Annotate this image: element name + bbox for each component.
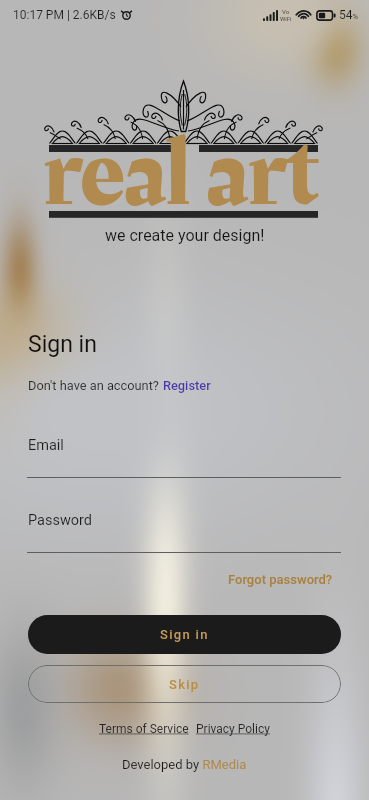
button[interactable]: Register	[163, 378, 211, 393]
staticText: Developed by RMedia	[122, 757, 247, 772]
button[interactable]: Terms of Service	[99, 722, 189, 736]
staticText: Skip	[169, 677, 200, 692]
button[interactable]: Forgot password?	[228, 572, 333, 587]
staticText: Register	[163, 378, 211, 393]
button[interactable]: Sign in	[28, 615, 341, 654]
staticText: 10:17 PM | 2.6KB/s	[13, 8, 116, 22]
staticText: Sign in	[160, 627, 209, 642]
staticText: real art	[43, 101, 319, 247]
button[interactable]: Privacy Policy	[196, 722, 270, 736]
staticText: Vo	[282, 8, 290, 15]
staticText: Password	[28, 512, 93, 529]
staticText: Don't have an account?	[28, 378, 159, 393]
staticText: we create your design!	[105, 226, 265, 245]
staticText: Privacy Policy	[196, 722, 270, 736]
staticText: Terms of Service	[99, 722, 189, 736]
staticText: Email	[28, 437, 64, 454]
staticText: 54%	[339, 8, 358, 22]
staticText: WiFi	[280, 15, 292, 22]
staticText: Forgot password?	[228, 572, 333, 587]
button[interactable]: Skip	[28, 665, 341, 703]
staticText: Sign in	[28, 331, 97, 358]
